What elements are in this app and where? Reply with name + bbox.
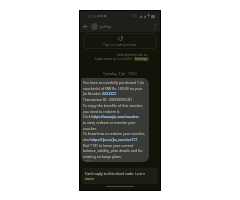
staticText: existing recharge plans. — [83, 154, 123, 158]
button[interactable]: More options — [149, 21, 160, 32]
staticText: To enjoy the benefits of this voucher, — [83, 103, 143, 107]
staticText: JioPay — [100, 24, 112, 29]
staticText: voucher(s) of INR Rs. 149.00 on your — [83, 86, 143, 90]
staticText: Jio Number XXXXXX7 — [83, 91, 117, 95]
staticText: You have successfully purchased 1 Jio — [83, 80, 145, 84]
button[interactable]: Settings — [134, 57, 149, 61]
staticText: 19:53 — [83, 160, 91, 162]
button[interactable]: Back — [80, 21, 91, 32]
button[interactable]: Can't reply to this short code. Learn mo… — [82, 168, 158, 184]
staticText: Can't reply to this short code. Learn mo… — [85, 171, 146, 181]
staticText: Settings — [135, 57, 148, 61]
staticText: Click https://www.jio.com/voucher — [83, 114, 139, 118]
button[interactable]: You have successfully purchased 1 Jio — [81, 78, 149, 162]
staticText: To know how to redeem your voucher, — [83, 131, 145, 135]
button[interactable]: Tap to load preview — [84, 34, 156, 48]
staticText: Link previews are on. — [117, 53, 149, 57]
staticText: to view, redeem or transfer your — [83, 120, 136, 124]
staticText: Learn more or turn off in — [95, 57, 134, 61]
staticText: you need to redeem it. — [83, 109, 120, 113]
staticText: also https://jio.co/jio_voucher777 — [83, 137, 138, 141]
staticText: balance, validity, plan details and for — [83, 148, 143, 152]
staticText: 17:06 — [87, 14, 97, 19]
staticText: Tuesday, 2 Jul · 19:53 — [103, 71, 137, 76]
staticText: Tap to load preview — [103, 42, 137, 47]
staticText: Dial *191 to know your current — [83, 143, 134, 147]
staticText: voucher. — [83, 126, 97, 130]
staticText: Transaction ID : BGXXXXXCLB1 — [83, 97, 133, 101]
staticText: 32% — [131, 14, 138, 18]
